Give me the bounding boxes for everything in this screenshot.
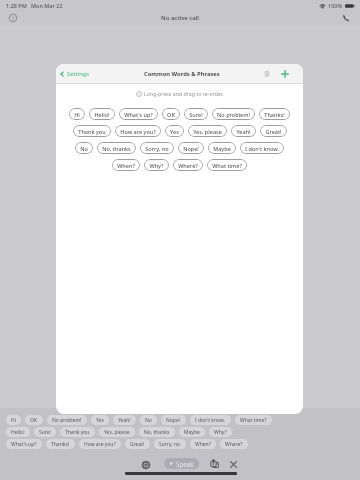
staticText: Settings [67,70,90,78]
button[interactable]: Hi [69,108,85,120]
staticText: Why? [149,162,164,169]
staticText: Hello! [11,429,25,436]
staticText: Common Words & Phrases [144,70,220,78]
button[interactable]: Thank you [73,125,111,137]
button[interactable]: Add [280,69,290,79]
button[interactable]: Share [210,459,219,468]
staticText: OK [30,417,38,424]
button[interactable]: Yes, please [188,125,227,137]
button[interactable]: Help [8,13,18,23]
button[interactable]: Call [341,13,351,23]
staticText: Mon Mar 22 [31,2,63,9]
button[interactable]: No problem! [47,415,87,425]
button[interactable]: Speak [164,458,199,469]
button[interactable]: I don't know. [190,415,231,425]
button[interactable]: What time? [207,159,247,171]
button[interactable]: What's up? [6,439,42,449]
button[interactable]: When? [112,159,140,171]
staticText: Thank you [78,128,106,135]
staticText: I don't know. [195,417,226,424]
button[interactable]: Thanks! [46,439,75,449]
button[interactable]: Sorry, no [140,142,174,154]
staticText: Yes [170,128,179,135]
button[interactable]: Hello! [89,108,115,120]
button[interactable]: Yeah! [113,415,136,425]
staticText: When? [117,162,135,169]
button[interactable]: How are you? [79,439,121,449]
button[interactable]: Nope! [161,415,186,425]
button[interactable]: OK [25,415,43,425]
button[interactable]: Yes [165,125,184,137]
button[interactable]: Yeah! [231,125,256,137]
button[interactable]: OK [162,108,180,120]
staticText: What time? [212,162,242,169]
button[interactable]: Why? [209,427,232,437]
staticText: Speak [176,460,194,468]
staticText: How are you? [120,128,156,135]
staticText: Hi [11,417,16,424]
staticText: Where? [178,162,198,169]
button[interactable]: Great! [260,125,287,137]
button[interactable]: No [75,142,93,154]
staticText: Sorry, no [145,145,169,152]
staticText: Great! [130,441,145,448]
button[interactable]: Maybe [179,427,205,437]
button[interactable]: Delete [262,69,272,79]
button[interactable]: Where? [220,439,248,449]
button[interactable]: When? [190,439,216,449]
button[interactable]: Sure! [34,427,56,437]
staticText: Yeah! [118,417,131,424]
button[interactable]: Why? [144,159,169,171]
button[interactable]: I don't know. [240,142,284,154]
button[interactable]: No [140,415,157,425]
button[interactable]: No, thanks [139,427,175,437]
staticText: Nope! [166,417,181,424]
staticText: Hi [74,111,80,118]
button[interactable]: What's up? [119,108,158,120]
staticText: Sure! [39,429,51,436]
button[interactable]: Sorry, no [154,439,186,449]
button[interactable]: Settings [141,460,151,470]
staticText: Why? [214,429,227,436]
staticText: Yes [96,417,104,424]
staticText: No problem! [217,111,250,118]
button[interactable]: Hi [6,415,21,425]
button[interactable]: How are you? [115,125,161,137]
button[interactable]: Nope! [178,142,204,154]
staticText: When? [195,441,211,448]
staticText: No problem! [52,417,82,424]
button[interactable]: No, thanks [97,142,136,154]
button[interactable]: Yes, please [99,427,135,437]
button[interactable]: Hello! [6,427,30,437]
staticText: What's up? [11,441,37,448]
staticText: 100% [328,2,343,9]
staticText: No [80,145,88,152]
button[interactable]: Where? [173,159,203,171]
button[interactable]: Thanks! [259,108,290,120]
button[interactable]: Close [229,460,238,469]
button[interactable]: Maybe [208,142,236,154]
button[interactable]: Settings [58,70,90,78]
button[interactable]: Thank you [60,427,95,437]
staticText: Hello! [94,111,110,118]
staticText: Maybe [184,429,200,436]
staticText: 1:28 PM [6,2,27,9]
staticText: What's up? [124,111,153,118]
staticText: No active call [161,14,199,22]
staticText: Yes, please [104,429,130,436]
staticText: No [145,417,152,424]
staticText: Sorry, no [159,441,181,448]
staticText: What time? [240,417,267,424]
button[interactable]: Sure! [184,108,208,120]
staticText: Great! [265,128,282,135]
staticText: No, thanks [102,145,131,152]
button[interactable]: What time? [235,415,272,425]
staticText: ? [12,15,15,22]
button[interactable]: No problem! [212,108,255,120]
staticText: How are you? [84,441,116,448]
staticText: Yes, please [193,128,222,135]
button[interactable]: Great! [125,439,150,449]
staticText: No, thanks [144,429,170,436]
button[interactable]: Yes [91,415,109,425]
staticText: Where? [225,441,243,448]
